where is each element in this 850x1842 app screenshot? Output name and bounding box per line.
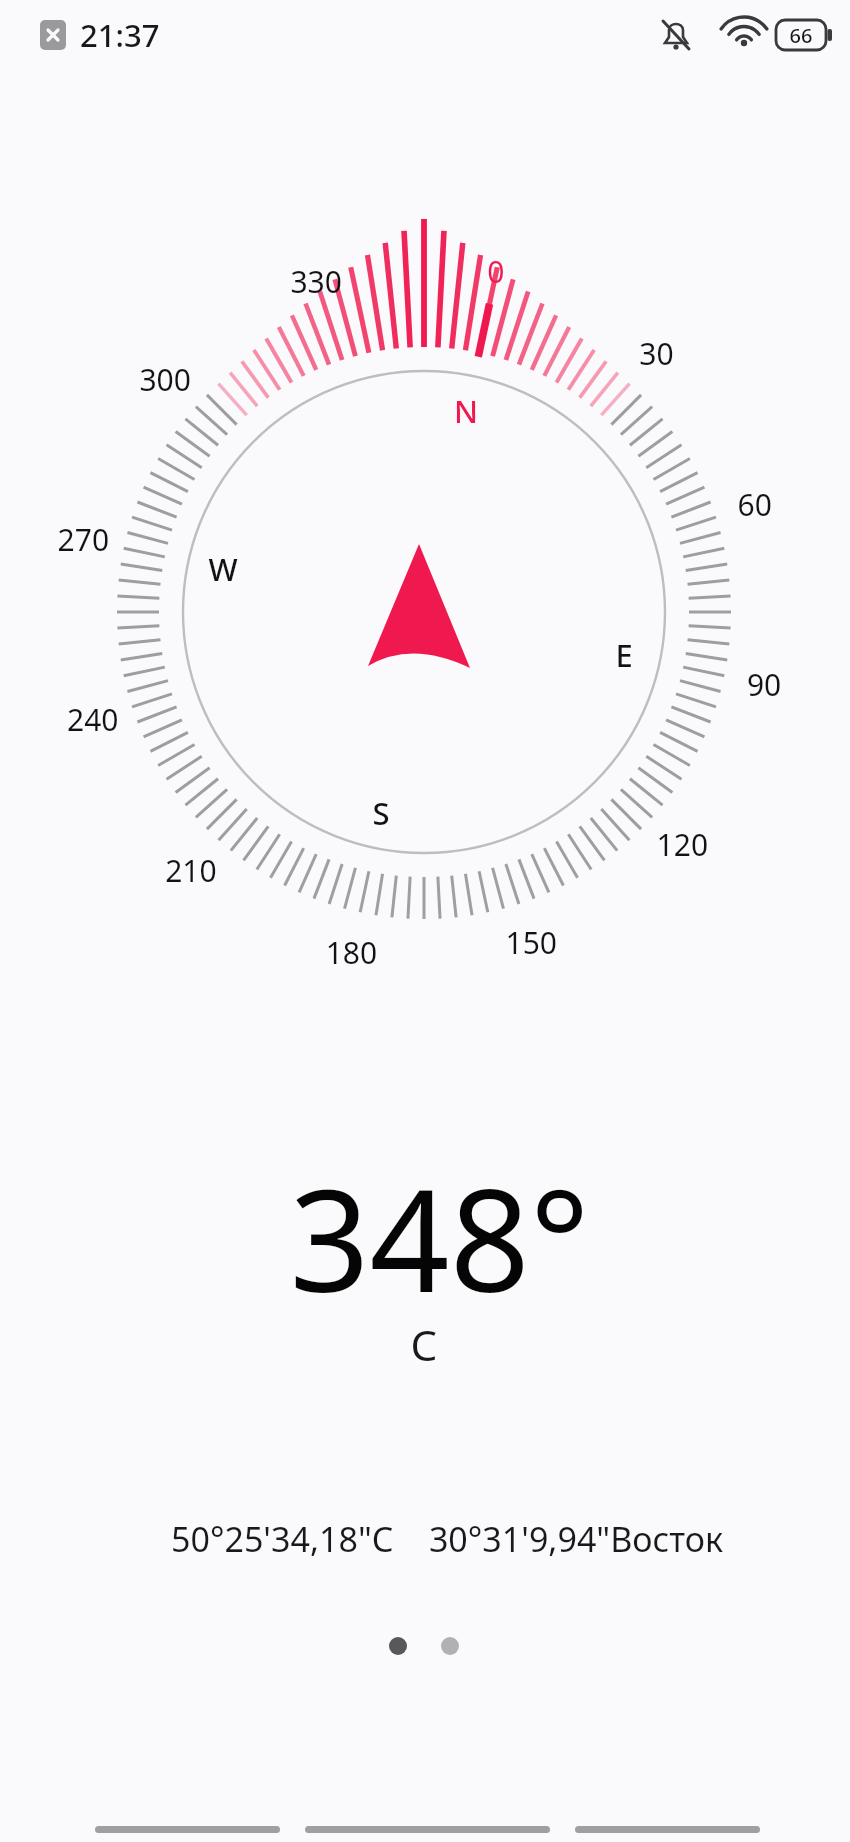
button[interactable]: Page 2 [441,1637,459,1655]
button[interactable]: Page 1 [389,1637,407,1655]
